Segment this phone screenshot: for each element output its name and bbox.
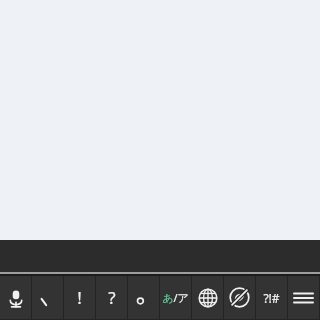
staticText: ?!#	[263, 290, 280, 306]
button[interactable]: Voice input	[0, 276, 31, 319]
button[interactable]: Kana input mode	[160, 276, 191, 319]
button[interactable]: Symbols	[256, 276, 287, 319]
staticText: !	[77, 286, 82, 309]
button[interactable]: Comma	[32, 276, 63, 319]
button[interactable]: Question mark	[96, 276, 127, 319]
button[interactable]: Handwriting off	[224, 276, 255, 319]
staticText: あ/ア	[162, 290, 189, 305]
button[interactable]: Change language	[192, 276, 223, 319]
button[interactable]: Menu	[288, 276, 319, 319]
button[interactable]: Full stop	[128, 276, 159, 319]
staticText: ?	[108, 286, 116, 309]
button[interactable]: Exclamation mark	[64, 276, 95, 319]
